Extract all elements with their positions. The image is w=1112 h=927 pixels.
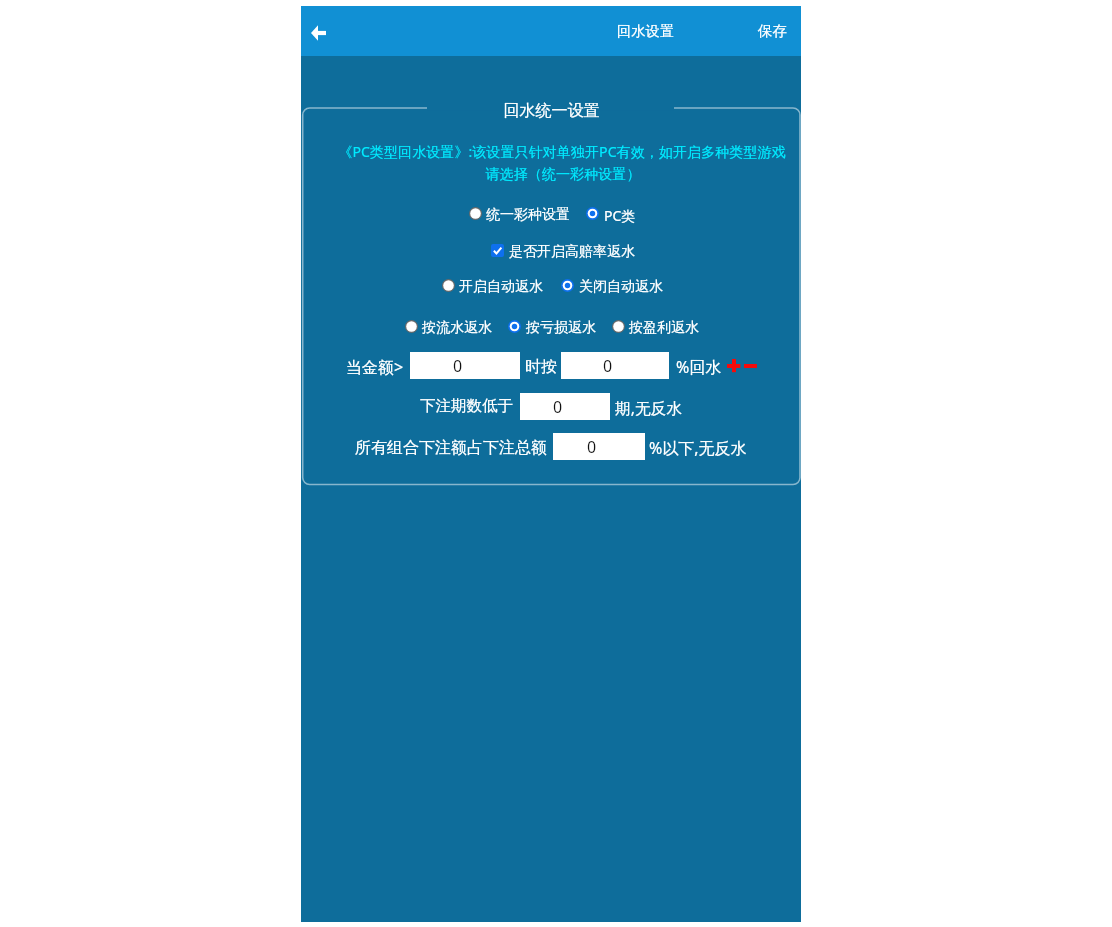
staticText: 按流水返水 xyxy=(422,319,492,337)
staticText: 按亏损返水 xyxy=(526,319,596,337)
staticText: 0 xyxy=(553,396,563,418)
staticText: 期,无反水 xyxy=(615,397,682,418)
staticText: 按盈利返水 xyxy=(629,319,699,337)
button[interactable]: 回水设置 xyxy=(611,6,681,56)
button[interactable]: 保存 xyxy=(744,6,800,56)
staticText: 是否开启高赔率返水 xyxy=(509,243,635,261)
staticText: 所有组合下注额占下注总额 xyxy=(355,438,547,458)
staticText: PC类 xyxy=(604,206,636,225)
staticText: 下注期数低于 xyxy=(420,396,513,416)
staticText: 保存 xyxy=(758,22,787,40)
staticText: %以下,无反水 xyxy=(649,437,747,459)
staticText: 开启自动返水 xyxy=(459,278,543,296)
staticText: 回水统一设置 xyxy=(503,100,600,120)
button[interactable]: 0 xyxy=(520,393,610,420)
button[interactable]: PC类 xyxy=(586,207,599,220)
button[interactable]: 统一彩种设置 xyxy=(469,207,482,220)
button[interactable]: 减少 xyxy=(741,356,759,376)
button[interactable]: 开启自动返水 xyxy=(442,279,455,292)
staticText: 统一彩种设置 xyxy=(486,206,570,224)
button[interactable]: 0 xyxy=(561,352,669,379)
staticText: 请选择（统一彩种设置） xyxy=(485,165,641,183)
button[interactable]: 按流水返水 xyxy=(405,320,418,333)
staticText: 0 xyxy=(453,355,463,377)
staticText: 时按 xyxy=(525,357,557,377)
button[interactable]: 0 xyxy=(410,352,520,379)
button[interactable]: Back xyxy=(301,10,335,56)
staticText: %回水 xyxy=(676,356,722,378)
button[interactable]: 0 xyxy=(553,433,645,460)
button[interactable]: 关闭自动返水 xyxy=(561,279,574,292)
staticText: 关闭自动返水 xyxy=(579,278,663,296)
button[interactable]: 是否开启高赔率返水 xyxy=(491,244,504,257)
button[interactable]: 按盈利返水 xyxy=(612,320,625,333)
staticText: 0 xyxy=(603,355,613,377)
staticText: 回水设置 xyxy=(617,22,675,40)
button[interactable]: 增加 xyxy=(725,356,743,376)
button[interactable]: 按亏损返水 xyxy=(508,320,521,333)
staticText: 当金额> xyxy=(346,356,404,378)
staticText: 0 xyxy=(587,436,597,458)
staticText: 《PC类型回水设置》:该设置只针对单独开PC有效，如开启多种类型游戏 xyxy=(338,142,786,161)
